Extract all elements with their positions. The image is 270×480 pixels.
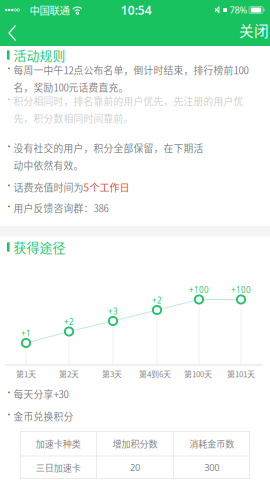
staticText: 第3天 [102,368,122,380]
staticText: 消耗金币数 [189,437,234,450]
staticText: 关闭 [239,19,269,41]
staticText: 300 [204,461,219,474]
staticText: +100 [231,284,251,295]
staticText: +2 [64,316,74,327]
staticText: 第4到6天 [139,368,171,380]
staticText: 中国联通 [29,2,69,18]
staticText: 金币兑换积分 [13,409,73,423]
staticText: 没有社交的用户，积分全部保留，在下期活动中依然有效。 [13,141,203,172]
staticText: 20 [130,461,140,474]
staticText: 每天分享+30 [13,387,68,401]
button[interactable]: 返回 [0,21,28,44]
staticText: 获得途径 [14,238,66,256]
staticText: 第101天 [227,368,255,380]
button[interactable]: 关闭 [230,21,270,45]
staticText: 积分相同时，排名靠前的用户优先，先注册的用户优先，积分数相同时间靠前。 [13,94,243,125]
staticText: 话费充值时间为 [13,180,83,194]
staticText: 加速卡种类 [36,437,81,450]
staticText: 增加积分数 [112,437,157,450]
staticText: 用户反馈咨询群：386 [13,201,108,215]
staticText: +100 [189,284,209,295]
staticText: +1 [21,328,31,339]
staticText: 第1天 [16,368,36,380]
staticText: 5个工作日 [83,180,129,194]
staticText: 78% [229,4,247,16]
staticText: 活动规则 [14,46,66,64]
staticText: +2 [152,295,162,306]
staticText: 每周一中午12点公布名单，倒计时结束，排行榜前100名，奖励100元话费直充。 [13,63,248,94]
staticText: +3 [108,306,118,317]
staticText: 10:54 [121,2,152,18]
staticText: 第100天 [184,368,212,380]
staticText: 第2天 [59,368,79,380]
staticText: 三日加速卡 [36,461,81,474]
